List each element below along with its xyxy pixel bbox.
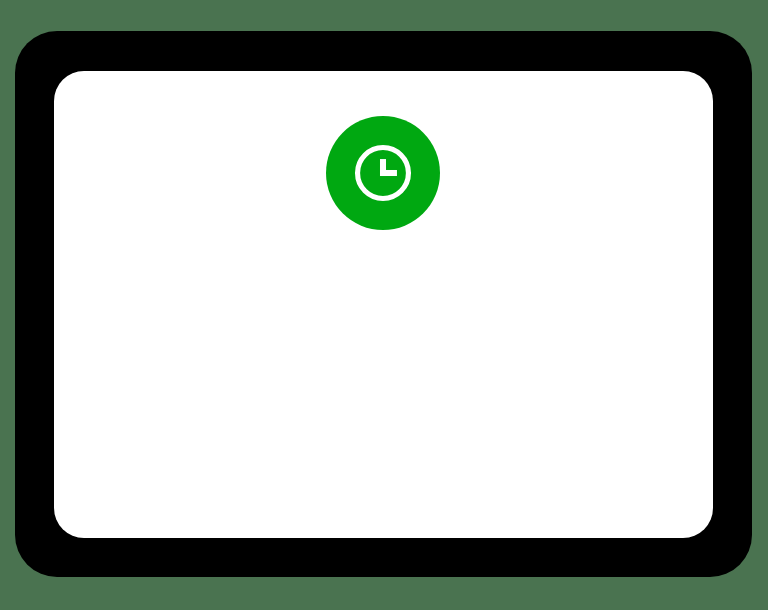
button[interactable]: Clock xyxy=(326,116,440,230)
